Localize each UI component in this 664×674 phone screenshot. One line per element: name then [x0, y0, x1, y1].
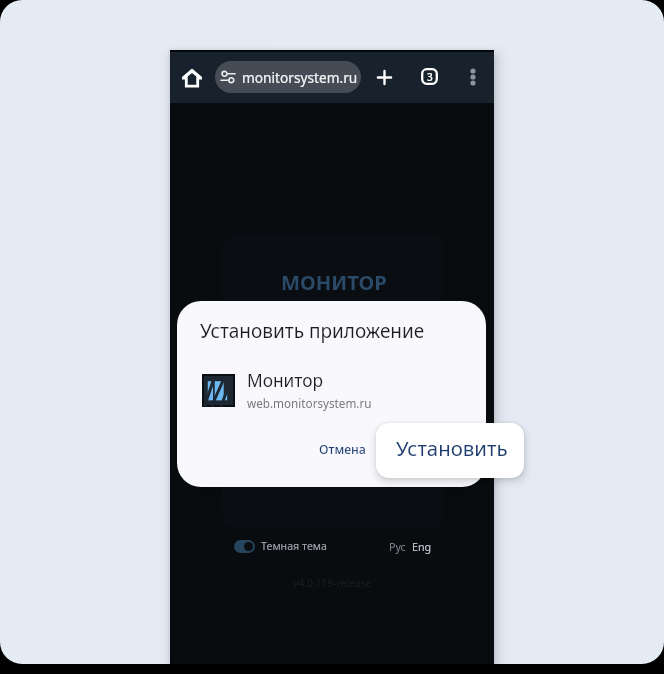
button[interactable]: Отмена — [307, 434, 378, 465]
staticText: Установить — [396, 434, 508, 462]
staticText: v4.0.119-release — [293, 576, 372, 590]
staticText: Монитор — [247, 369, 323, 393]
button[interactable]: New tab — [374, 67, 395, 88]
button[interactable]: Рус — [389, 540, 406, 555]
staticText: Темная тема — [261, 539, 327, 554]
staticText: Рус — [389, 540, 406, 555]
button[interactable]: Tabs — [421, 68, 438, 85]
button[interactable]: Eng — [412, 540, 432, 555]
button[interactable]: Установить — [376, 423, 524, 478]
staticText: 3 — [427, 70, 433, 84]
button[interactable]: monitorsystem.ru — [215, 61, 361, 93]
staticText: web.monitorsystem.ru — [247, 395, 372, 411]
staticText: Eng — [412, 540, 432, 555]
staticText: monitorsystem.ru — [242, 68, 358, 87]
button[interactable]: More options — [463, 67, 483, 87]
staticText: МОНИТОР — [281, 268, 387, 296]
staticText: Установить приложение — [200, 318, 425, 344]
button[interactable]: Темная тема — [234, 539, 327, 554]
button[interactable]: Home — [182, 68, 202, 88]
staticText: Отмена — [319, 441, 366, 458]
